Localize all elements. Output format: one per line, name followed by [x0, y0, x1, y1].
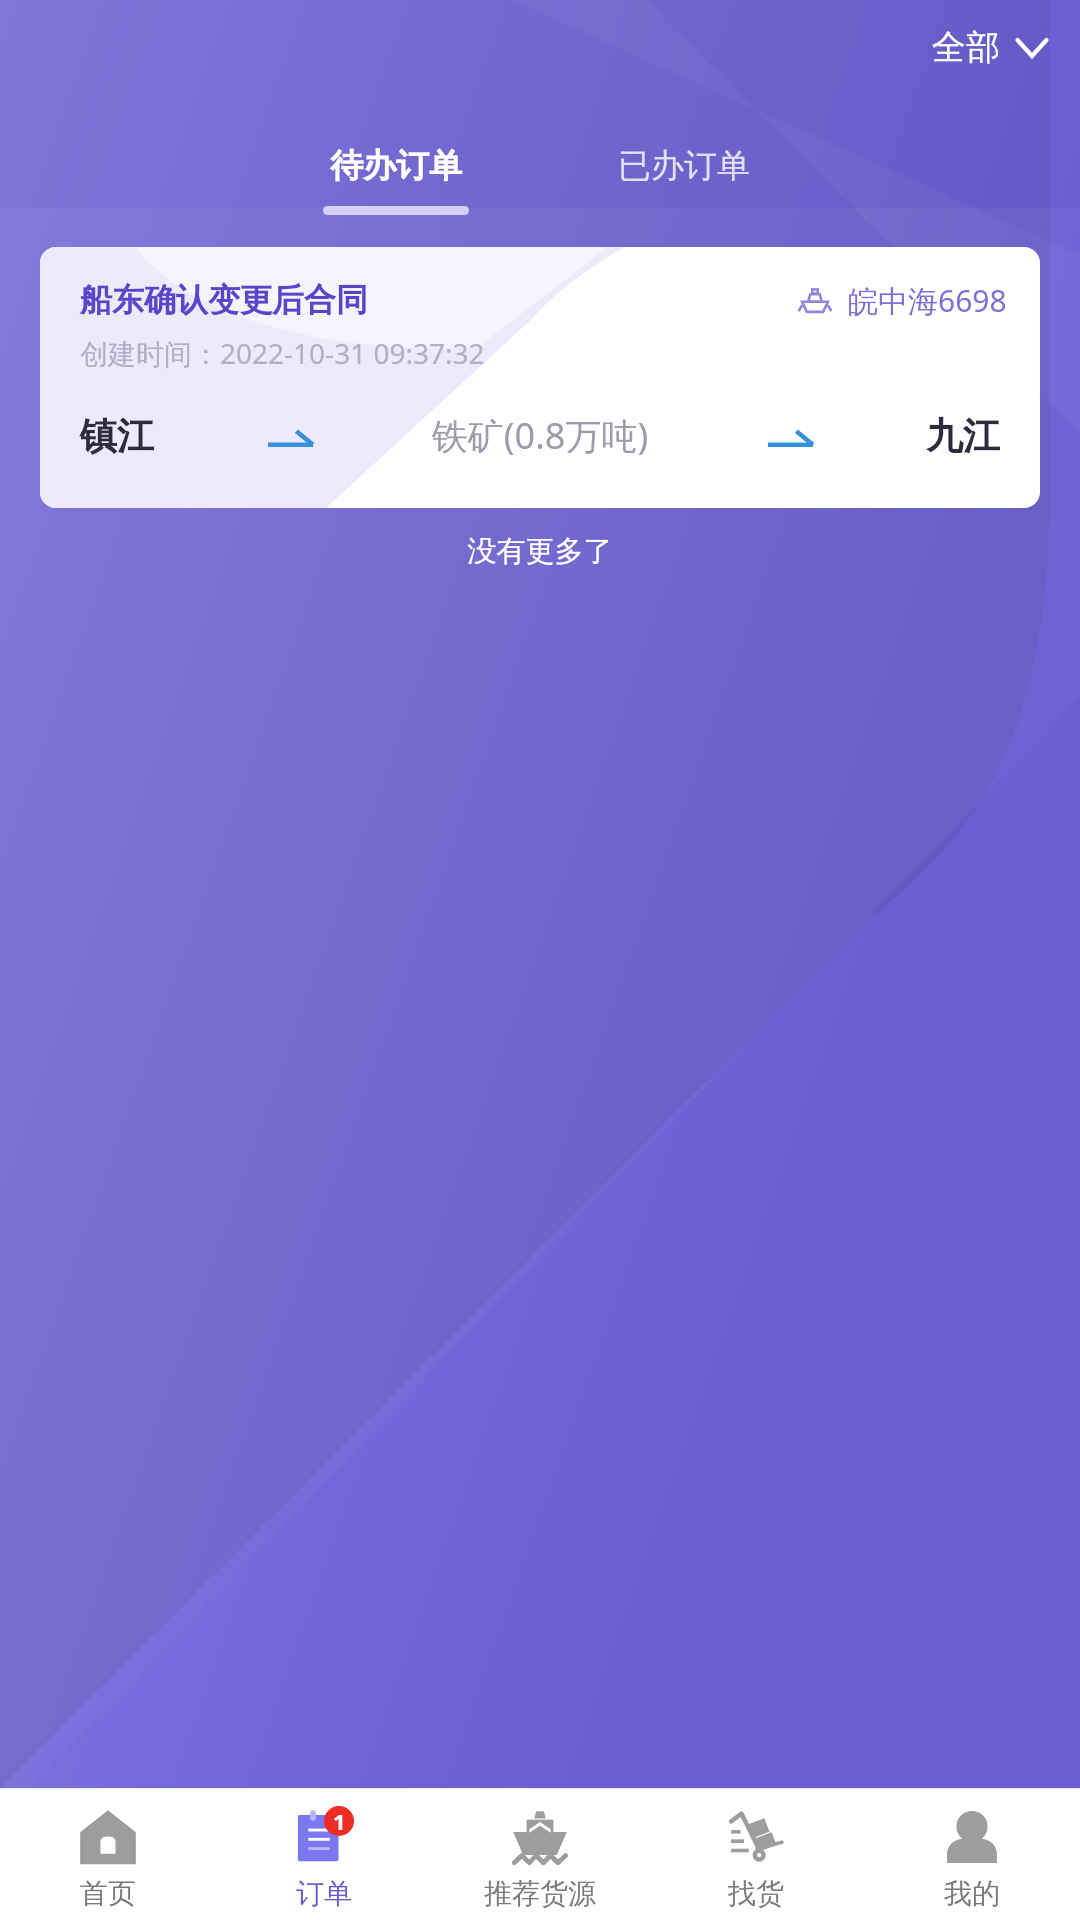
button[interactable]: Home	[0, 1789, 216, 1920]
staticText: 待办订单	[330, 145, 462, 187]
staticText: 已办订单	[618, 145, 750, 187]
staticText: 全部	[932, 26, 1000, 69]
button[interactable]: 全部	[924, 20, 1056, 75]
staticText: 1	[333, 1806, 346, 1836]
staticText: 船东确认变更后合同	[80, 280, 368, 320]
button[interactable]: Profile	[864, 1789, 1080, 1920]
staticText: 首页	[80, 1876, 136, 1911]
staticText: 镇江	[80, 413, 154, 460]
staticText: 没有更多了	[0, 533, 1080, 570]
staticText: 皖中海6698	[848, 280, 1007, 321]
staticText: 我的	[944, 1876, 1000, 1911]
button[interactable]: 船东确认变更后合同	[40, 247, 1040, 508]
staticText: 订单	[296, 1876, 352, 1911]
button[interactable]: Orders	[216, 1789, 432, 1920]
button[interactable]: Recommended cargo	[432, 1789, 648, 1920]
staticText: 铁矿(0.8万吨)	[40, 411, 1040, 460]
staticText: 推荐货源	[484, 1876, 596, 1911]
button[interactable]: 待办订单	[268, 120, 524, 215]
button[interactable]: 已办订单	[556, 120, 812, 187]
staticText: 找货	[728, 1876, 784, 1911]
staticText: 九江	[926, 413, 1000, 460]
button[interactable]: Find cargo	[648, 1789, 864, 1920]
staticText: 创建时间：2022-10-31 09:37:32	[80, 334, 485, 372]
